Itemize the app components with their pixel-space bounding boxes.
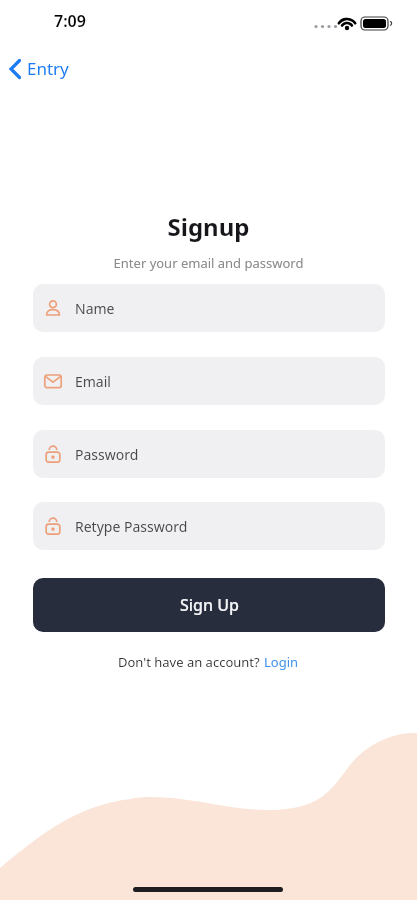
staticText: Entry [27, 57, 69, 80]
button[interactable]: Name [33, 284, 385, 332]
button[interactable]: Password [33, 430, 385, 478]
staticText: Retype Password [75, 517, 188, 536]
button[interactable]: Email [33, 357, 385, 405]
staticText: 7:09 [54, 10, 86, 32]
staticText: Enter your email and password [0, 254, 417, 272]
staticText: Email [75, 372, 111, 391]
staticText: Password [75, 445, 139, 464]
staticText: Name [75, 299, 115, 318]
button[interactable]: Entry [4, 53, 73, 84]
staticText: Signup [0, 210, 417, 243]
button[interactable]: Login [264, 653, 299, 671]
staticText: Sign Up [180, 594, 239, 616]
button[interactable]: Retype Password [33, 502, 385, 550]
staticText: Don't have an account? [118, 653, 264, 671]
button[interactable]: Sign Up [33, 578, 385, 632]
